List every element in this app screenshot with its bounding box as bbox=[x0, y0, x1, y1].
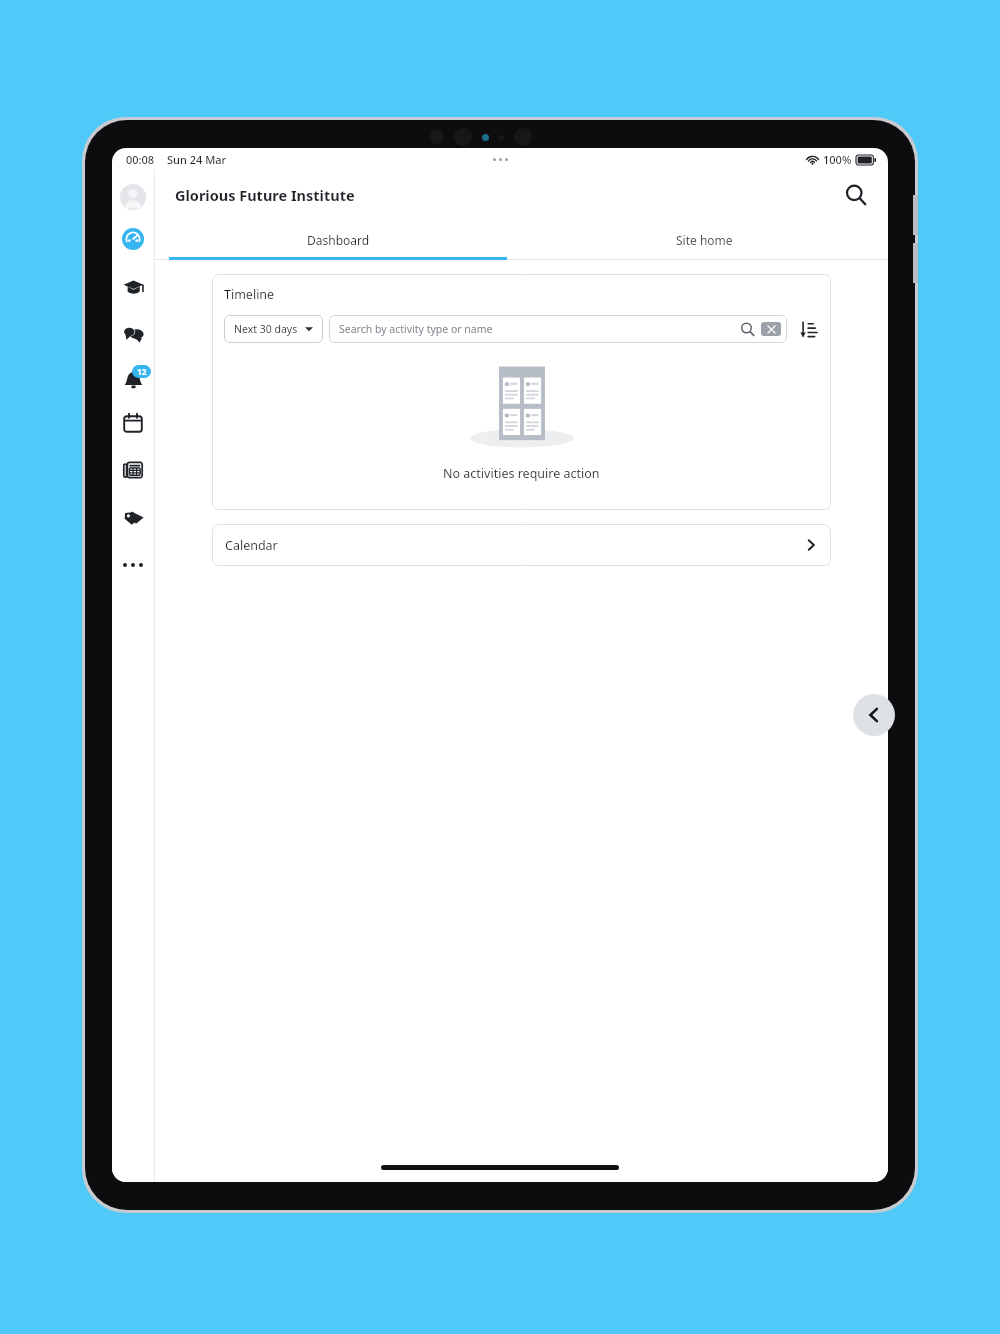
staticText: 12 bbox=[137, 366, 147, 378]
staticText: Next 30 days bbox=[234, 322, 298, 336]
staticText: 100% bbox=[823, 152, 852, 167]
staticText: Glorious Future Institute bbox=[175, 185, 355, 205]
button[interactable]: Calendar bbox=[118, 408, 148, 438]
staticText: Calendar bbox=[225, 537, 804, 554]
button[interactable]: Profile bbox=[120, 184, 146, 210]
button[interactable]: More bbox=[118, 550, 148, 580]
button[interactable]: News bbox=[118, 455, 148, 485]
button[interactable]: Messages bbox=[118, 318, 148, 348]
button[interactable]: Search by activity type or name bbox=[329, 315, 787, 343]
staticText: No activities require action bbox=[443, 465, 600, 482]
staticText: Sun 24 Mar bbox=[167, 152, 227, 167]
button[interactable]: Clear bbox=[761, 322, 781, 336]
button[interactable]: Courses bbox=[118, 271, 148, 301]
button[interactable]: Dashboard bbox=[118, 224, 148, 254]
button[interactable]: Back bbox=[853, 694, 895, 736]
button[interactable]: Sort bbox=[797, 318, 819, 340]
staticText: Timeline bbox=[224, 286, 275, 303]
button[interactable]: Site home bbox=[521, 219, 888, 260]
button[interactable]: Dashboard bbox=[155, 219, 521, 260]
staticText: Search by activity type or name bbox=[339, 322, 740, 336]
button[interactable]: Tags bbox=[118, 502, 148, 532]
button[interactable]: Search bbox=[838, 177, 874, 213]
staticText: Site home bbox=[676, 232, 733, 248]
button[interactable]: Calendar bbox=[212, 524, 831, 566]
staticText: 00:08 bbox=[126, 152, 155, 167]
staticText: Dashboard bbox=[307, 232, 370, 248]
button[interactable]: Next 30 days bbox=[224, 315, 323, 343]
button[interactable]: Notifications bbox=[118, 363, 148, 393]
